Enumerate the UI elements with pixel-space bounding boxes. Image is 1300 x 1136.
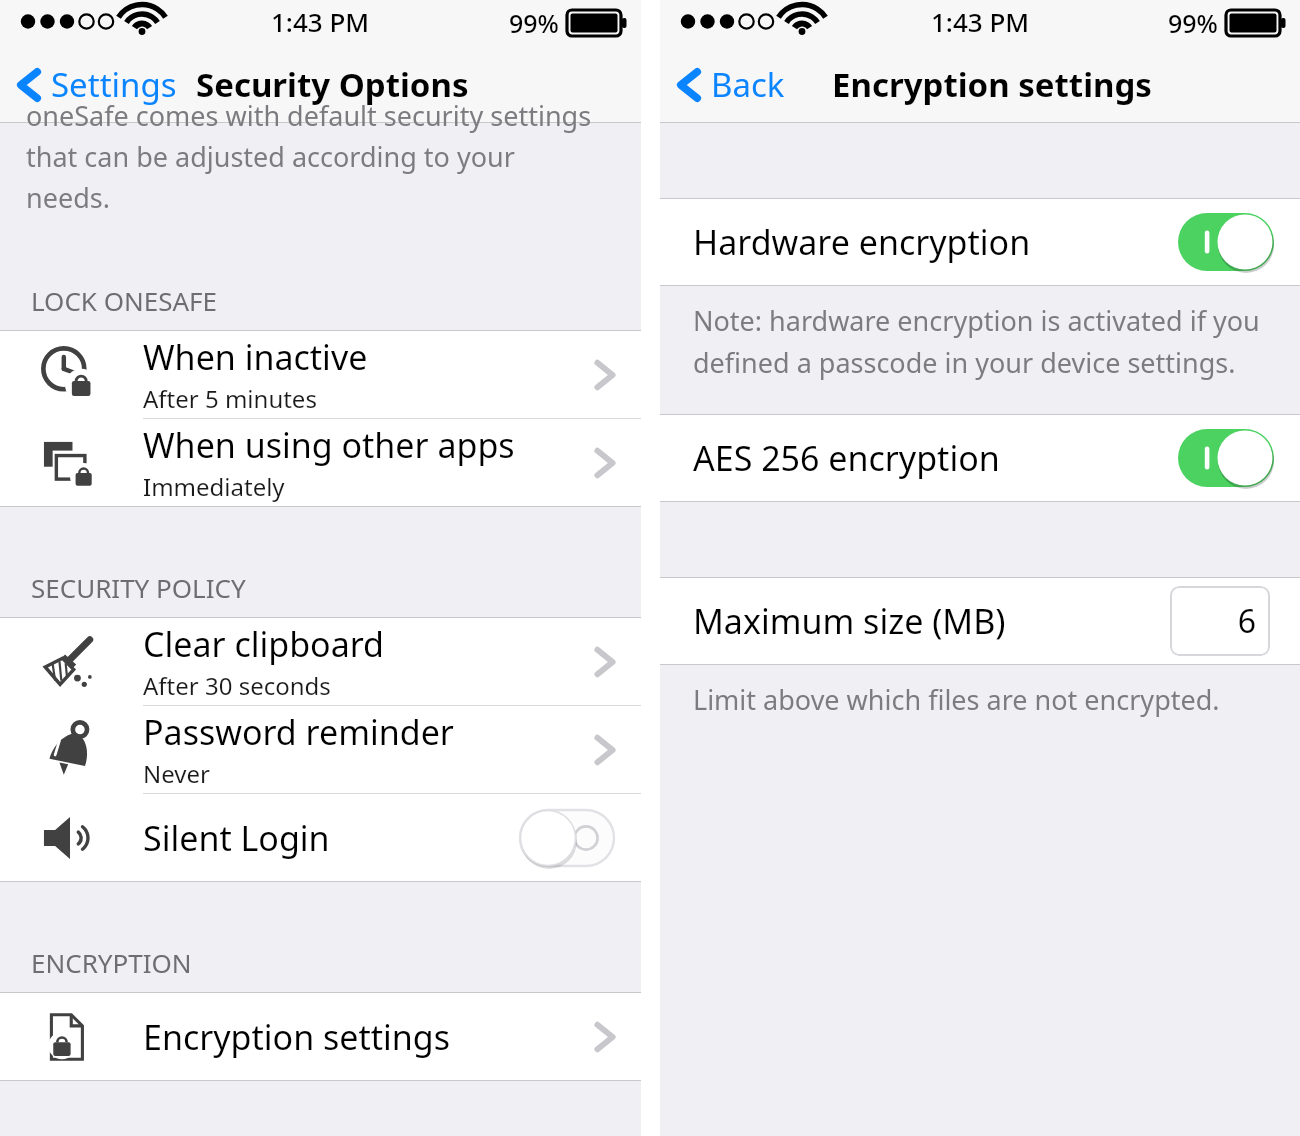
staticText: SECURITY POLICY <box>31 570 246 605</box>
staticText: Settings <box>51 62 177 107</box>
staticText: 1:43 PM <box>271 4 370 39</box>
button[interactable]: Maximum size (MB) <box>660 578 1300 664</box>
staticText: Maximum size (MB) <box>693 598 1170 644</box>
staticText: 6 <box>1237 599 1256 643</box>
button[interactable]: Settings <box>0 56 185 113</box>
staticText: Note: hardware encryption is activated i… <box>693 302 1260 339</box>
button[interactable]: Hardware encryption toggle, on <box>1178 213 1274 271</box>
button[interactable]: AES 256 encryption <box>660 415 1300 501</box>
staticText: Limit above which files are not encrypte… <box>693 681 1220 718</box>
staticText: Never <box>143 757 210 790</box>
staticText: Encryption settings <box>832 62 1152 107</box>
button[interactable]: Encryption settings <box>0 993 641 1080</box>
button[interactable]: Password reminder <box>0 706 641 793</box>
staticText: that can be adjusted according to your <box>26 138 515 175</box>
staticText: When inactive <box>143 334 368 380</box>
staticText: 99% <box>1168 6 1218 40</box>
staticText: Hardware encryption <box>693 219 1178 265</box>
button[interactable]: When using other apps <box>0 419 641 506</box>
staticText: Encryption settings <box>143 1014 595 1060</box>
button[interactable]: When inactive <box>0 331 641 418</box>
staticText: ENCRYPTION <box>31 945 192 980</box>
staticText: After 5 minutes <box>143 382 317 415</box>
button[interactable]: AES 256 encryption toggle, on <box>1178 429 1274 487</box>
staticText: Clear clipboard <box>143 621 384 667</box>
staticText: oneSafe comes with default security sett… <box>26 97 592 134</box>
staticText: When using other apps <box>143 422 515 468</box>
button[interactable]: Silent Login <box>0 794 641 881</box>
staticText: Back <box>711 62 785 107</box>
staticText: LOCK ONESAFE <box>31 283 218 318</box>
staticText: Password reminder <box>143 709 454 755</box>
staticText: Security Options <box>196 62 469 107</box>
staticText: 1:43 PM <box>931 4 1030 39</box>
staticText: defined a passcode in your device settin… <box>693 344 1236 381</box>
button[interactable]: Silent Login toggle, off <box>519 809 615 867</box>
button[interactable]: 6 <box>1170 586 1270 656</box>
staticText: Silent Login <box>143 815 519 861</box>
button[interactable]: Back <box>660 56 793 113</box>
staticText: Immediately <box>143 470 285 503</box>
staticText: AES 256 encryption <box>693 435 1178 481</box>
staticText: 99% <box>509 6 559 40</box>
staticText: After 30 seconds <box>143 669 331 702</box>
button[interactable]: Clear clipboard <box>0 618 641 705</box>
button[interactable]: Hardware encryption <box>660 199 1300 285</box>
staticText: needs. <box>26 179 110 216</box>
